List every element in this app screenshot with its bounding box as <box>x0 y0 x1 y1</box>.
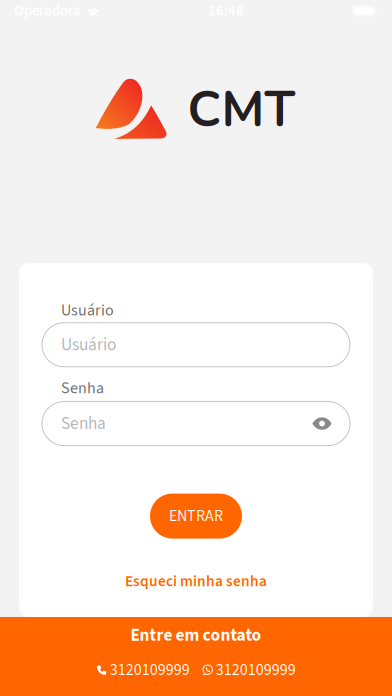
button[interactable]: ENTRAR <box>150 494 242 539</box>
button[interactable]: 3120109999 <box>96 659 190 681</box>
button[interactable]: Esqueci minha senha <box>125 571 267 592</box>
button[interactable]: Mostrar senha <box>309 408 335 439</box>
staticText: Operadora <box>14 1 81 21</box>
staticText: Esqueci minha senha <box>125 571 267 592</box>
staticText: ENTRAR <box>169 505 223 527</box>
staticText: Usuário <box>61 299 114 322</box>
staticText: CMT <box>187 76 295 143</box>
staticText: 16:48 <box>208 1 244 21</box>
staticText: Usuário <box>61 332 116 357</box>
staticText: 3120109999 <box>110 659 190 681</box>
staticText: Senha <box>61 377 104 400</box>
staticText: Entre em contato <box>130 623 261 648</box>
button[interactable]: 3120109999 <box>202 659 296 681</box>
staticText: Senha <box>61 411 106 436</box>
staticText: 3120109999 <box>216 659 296 681</box>
